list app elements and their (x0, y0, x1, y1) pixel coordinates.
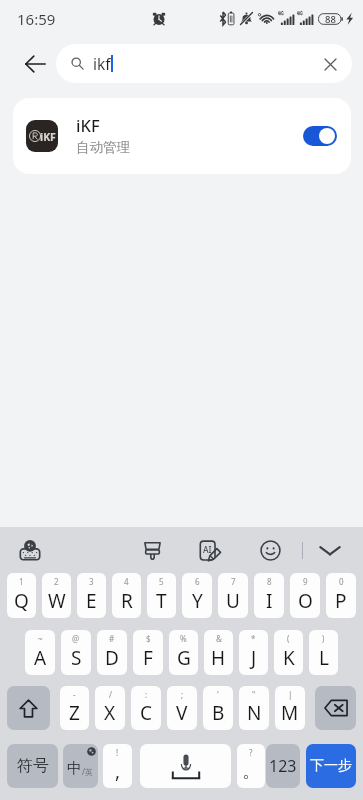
button[interactable]: ; (167, 686, 197, 730)
button[interactable]: 7 (218, 573, 248, 618)
button[interactable]: Back (18, 47, 52, 81)
button[interactable]: Hide keyboard (315, 535, 345, 565)
button[interactable]: 9 (290, 573, 320, 618)
button[interactable]: | (275, 686, 305, 730)
button[interactable]: 4 (112, 573, 141, 618)
staticText: A (34, 645, 47, 671)
staticText: ! (116, 747, 119, 758)
staticText: V (176, 700, 188, 726)
button[interactable]: Toggle auto management (303, 126, 337, 146)
staticText: R (121, 588, 133, 614)
staticText: - (73, 689, 76, 700)
button[interactable]: 8 (254, 573, 284, 618)
staticText: N (247, 700, 262, 726)
button[interactable]: Clear (317, 51, 343, 77)
staticText: 16:59 (17, 9, 56, 29)
button[interactable]: iKF (13, 98, 351, 174)
staticText: W (48, 588, 66, 614)
staticText: G (177, 645, 191, 671)
button[interactable]: 123 (266, 744, 300, 788)
staticText: M (281, 700, 299, 726)
button[interactable]: ( (274, 630, 303, 675)
staticText: 9 (303, 576, 308, 587)
button[interactable]: # (97, 630, 127, 675)
button[interactable]: Backspace (315, 686, 356, 730)
button[interactable]: AI writing (194, 535, 224, 565)
button[interactable]: - (60, 686, 89, 730)
button[interactable]: 6 (182, 573, 212, 618)
staticText: & (216, 633, 222, 644)
staticText: /英 (82, 766, 93, 777)
button[interactable]: ) (309, 630, 338, 675)
button[interactable]: @ (61, 630, 91, 675)
button[interactable]: : (131, 686, 161, 730)
button[interactable]: " (239, 686, 269, 730)
staticText: 符号 (17, 756, 49, 776)
staticText: U (226, 588, 240, 614)
button[interactable]: 3 (77, 573, 106, 618)
button[interactable]: ! (103, 744, 132, 788)
staticText: : (145, 689, 148, 700)
button[interactable]: Space (140, 744, 231, 788)
staticText: Q (14, 588, 29, 614)
button[interactable]: ~ (25, 630, 55, 675)
button[interactable]: ikf (56, 44, 352, 83)
staticText: 。 (242, 759, 261, 783)
staticText: 自动管理 (76, 139, 130, 156)
staticText: # (109, 633, 115, 644)
staticText: ; (181, 689, 184, 700)
staticText: S (71, 645, 82, 671)
staticText: ' (217, 689, 219, 700)
staticText: 3 (89, 576, 94, 587)
staticText: iKF (76, 114, 100, 136)
staticText: " (252, 689, 256, 700)
button[interactable]: & (204, 630, 233, 675)
button[interactable]: 2 (42, 573, 71, 618)
staticText: E (86, 588, 97, 614)
staticText: X (104, 700, 116, 726)
button[interactable]: Emoji (255, 535, 285, 565)
staticText: 1 (19, 576, 24, 587)
staticText: * (251, 633, 256, 644)
staticText: ikf (93, 53, 111, 74)
button[interactable]: ' (203, 686, 233, 730)
staticText: H (211, 645, 226, 671)
staticText: 8 (267, 576, 272, 587)
staticText: ? (249, 747, 253, 758)
staticText: 下一步 (310, 757, 352, 775)
button[interactable]: * (239, 630, 268, 675)
button[interactable]: Switch language (16, 536, 44, 564)
button[interactable]: ? (237, 744, 265, 788)
staticText: , (115, 758, 121, 784)
button[interactable]: Shift (7, 686, 50, 730)
staticText: / (109, 689, 112, 700)
staticText: AI (203, 544, 212, 556)
button[interactable]: 1 (7, 573, 36, 618)
staticText: iKF (40, 130, 56, 144)
staticText: K (283, 645, 295, 671)
staticText: J (251, 645, 257, 671)
button[interactable]: 下一步 (306, 744, 356, 788)
button[interactable]: % (169, 630, 198, 675)
staticText: | (288, 689, 293, 700)
staticText: 123 (269, 755, 297, 777)
button[interactable]: 0 (326, 573, 356, 618)
staticText: L (319, 645, 329, 671)
staticText: D (105, 645, 119, 671)
staticText: % (180, 633, 187, 644)
staticText: 6 (195, 576, 200, 587)
button[interactable]: 中 (63, 744, 98, 788)
button[interactable]: / (95, 686, 125, 730)
staticText: Y (192, 588, 203, 614)
staticText: ( (287, 633, 290, 644)
staticText: 5 (159, 576, 164, 587)
staticText: I (266, 588, 273, 614)
staticText: @ (72, 633, 80, 644)
button[interactable]: 5 (147, 573, 176, 618)
button[interactable]: Theme (137, 535, 167, 565)
button[interactable]: $ (133, 630, 163, 675)
button[interactable]: 符号 (7, 744, 58, 788)
staticText: Z (69, 700, 80, 726)
staticText: ) (322, 633, 325, 644)
staticText: 2 (54, 576, 59, 587)
